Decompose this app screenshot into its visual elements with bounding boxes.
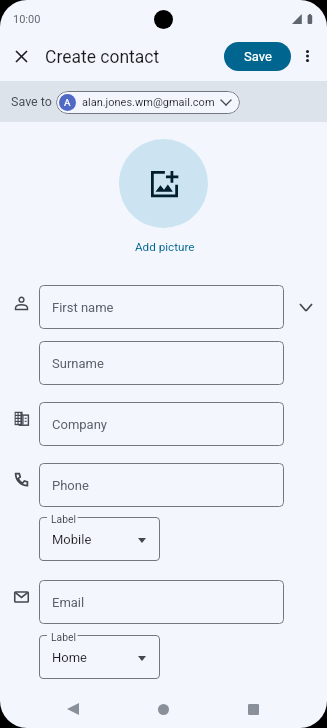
button[interactable]: Phone <box>39 463 284 507</box>
staticText: Save <box>244 49 272 64</box>
staticText: Label <box>51 631 76 643</box>
button[interactable]: Home <box>151 691 176 727</box>
button[interactable]: More options <box>295 40 319 72</box>
staticText: Email <box>52 595 85 610</box>
staticText: alan.jones.wm@gmail.com <box>82 96 215 109</box>
staticText: Label <box>51 513 76 525</box>
staticText: Home <box>52 650 87 665</box>
button[interactable]: Save <box>224 42 291 71</box>
button[interactable]: A <box>56 91 240 114</box>
button[interactable]: Add picture <box>120 238 209 256</box>
button[interactable]: Label <box>39 635 160 679</box>
button[interactable]: Recent apps <box>241 691 266 727</box>
button[interactable]: Surname <box>39 341 284 385</box>
staticText: First name <box>52 300 114 315</box>
button[interactable]: Email <box>39 580 284 624</box>
button[interactable]: Company <box>39 402 284 446</box>
staticText: A <box>64 97 71 108</box>
staticText: Company <box>52 417 107 432</box>
staticText: Mobile <box>52 532 92 547</box>
button[interactable]: First name <box>39 285 284 329</box>
button[interactable]: Close <box>5 40 37 72</box>
staticText: 10:00 <box>13 13 41 26</box>
button[interactable]: Back <box>60 691 85 727</box>
button[interactable]: Expand name fields <box>292 293 320 321</box>
button[interactable]: Add picture <box>119 139 208 228</box>
staticText: Create contact <box>45 47 160 68</box>
staticText: Phone <box>52 478 89 493</box>
staticText: Surname <box>52 356 104 371</box>
staticText: Save to <box>11 94 52 109</box>
button[interactable]: Label <box>39 517 160 561</box>
staticText: Add picture <box>135 240 195 254</box>
